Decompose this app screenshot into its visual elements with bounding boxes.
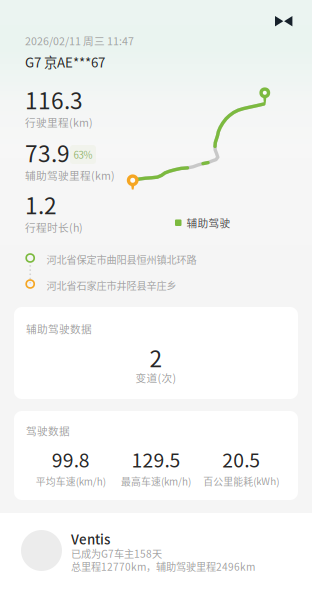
button[interactable]: Share [266, 7, 302, 36]
staticText: 总里程12770km，辅助驾驶里程2496km [71, 559, 255, 574]
button[interactable]: Ventis [0, 513, 312, 592]
staticText: 河北省石家庄市井陉县辛庄乡 [46, 278, 176, 293]
staticText: 辅助驾驶数据 [26, 321, 92, 336]
staticText: 63% [73, 147, 92, 162]
staticText: 河北省保定市曲阳县恒州镇北环路 [46, 252, 196, 267]
staticText: 辅助驾驶里程(km) [25, 167, 115, 183]
staticText: 平均车速(km/h) [36, 474, 106, 488]
staticText: 已成为G7车主158天 [71, 546, 162, 561]
staticText: 百公里能耗(kWh) [203, 474, 279, 488]
staticText: 20.5 [222, 445, 260, 473]
staticText: Ventis [71, 529, 110, 548]
staticText: 116.3 [25, 83, 83, 116]
staticText: 驾驶数据 [26, 423, 70, 438]
staticText: G7 京AE***67 [25, 52, 105, 71]
staticText: 73.9 [25, 136, 70, 169]
staticText: 129.5 [131, 445, 180, 473]
staticText: 行驶里程(km) [25, 114, 93, 130]
staticText: 2026/02/11 周三 11:47 [25, 33, 134, 48]
staticText: 行程时长(h) [25, 219, 83, 235]
staticText: 辅助驾驶 [186, 215, 230, 230]
staticText: 2 [149, 341, 162, 374]
staticText: 1.2 [25, 188, 57, 221]
staticText: 最高车速(km/h) [121, 474, 191, 488]
staticText: 变道(次) [135, 370, 176, 385]
staticText: 99.8 [52, 445, 90, 473]
